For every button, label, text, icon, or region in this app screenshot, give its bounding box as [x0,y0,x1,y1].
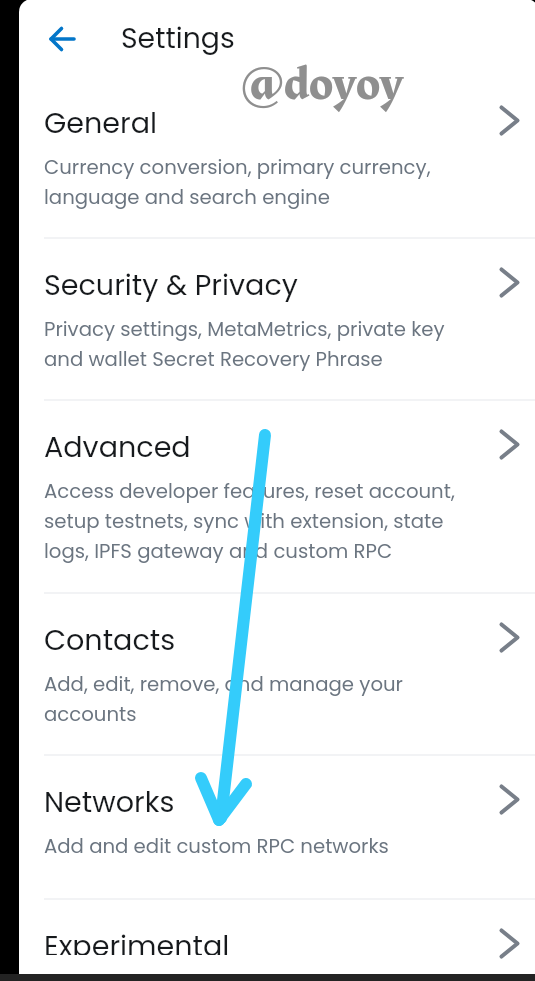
staticText: Currency conversion, primary currency, l… [44,153,431,211]
staticText: Contacts [44,620,176,660]
staticText: Add and edit custom RPC networks [44,832,389,860]
staticText: General [44,103,158,143]
button[interactable]: Experimental [19,900,535,980]
button[interactable]: General [19,77,535,237]
button[interactable]: Networks [19,756,535,898]
staticText: Settings [121,18,235,58]
button[interactable]: Security & Privacy [19,239,535,399]
staticText: Advanced [44,427,191,467]
staticText: Privacy settings, MetaMetrics, private k… [44,315,445,373]
staticText: Add, edit, remove, and manage your accou… [44,670,403,728]
staticText: Networks [44,782,175,822]
staticText: Experimental [44,926,230,955]
button[interactable]: Advanced [19,401,535,592]
staticText: Access developer features, reset account… [44,477,455,565]
button[interactable]: Contacts [19,594,535,754]
button[interactable]: Back [41,16,87,62]
staticText: @doyoy [241,48,404,121]
staticText: Security & Privacy [44,265,298,305]
